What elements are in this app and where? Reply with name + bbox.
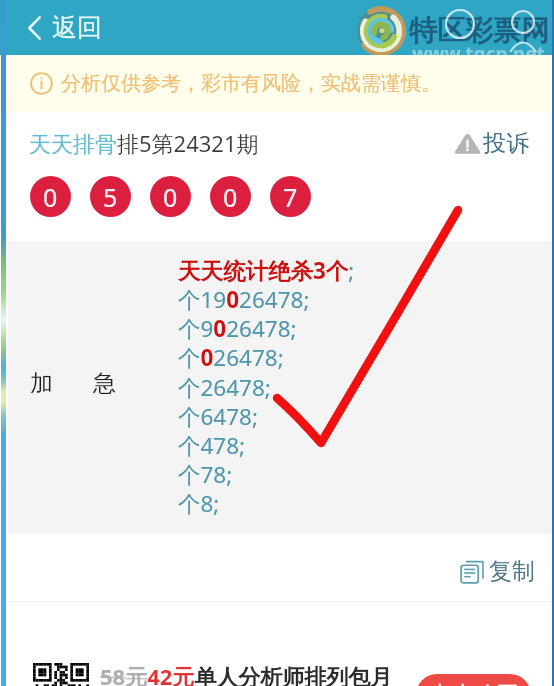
button[interactable]: 返回 <box>0 4 116 51</box>
staticText: 投诉 <box>483 129 529 158</box>
staticText: 7 <box>283 180 298 214</box>
button[interactable]: 复制 <box>459 557 554 586</box>
staticText: www.tgcp.net <box>412 41 545 67</box>
staticText: 0 <box>43 180 58 214</box>
staticText: 个78; <box>178 459 233 490</box>
staticText: 58元42元单人分析师排列包月 <box>100 661 393 686</box>
staticText: 0 <box>223 180 238 214</box>
staticText: 复制 <box>489 557 535 586</box>
staticText: 天天统计绝杀3个; <box>178 255 355 286</box>
staticText: 个026478; <box>178 342 284 373</box>
staticText: 0 <box>163 180 178 214</box>
staticText: 点击购买 <box>430 681 518 686</box>
staticText: 加 <box>30 369 53 398</box>
staticText: 5 <box>103 180 118 214</box>
staticText: 个478; <box>178 430 246 461</box>
staticText: 个26478; <box>178 372 271 403</box>
staticText: 个8; <box>178 488 220 519</box>
staticText: 分析仅供参考，彩市有风险，实战需谨慎。 <box>61 71 441 96</box>
button[interactable]: 点击购买 <box>416 674 531 686</box>
staticText: 个19026478; <box>178 284 310 315</box>
staticText: 返回 <box>52 12 102 43</box>
button[interactable]: 投诉 <box>454 129 554 158</box>
staticText: 天天排骨排5第24321期 <box>29 128 259 158</box>
staticText: 个6478; <box>178 401 259 432</box>
staticText: 个9026478; <box>178 313 297 344</box>
staticText: 特区彩票网 <box>409 13 549 48</box>
staticText: 急 <box>93 369 116 398</box>
